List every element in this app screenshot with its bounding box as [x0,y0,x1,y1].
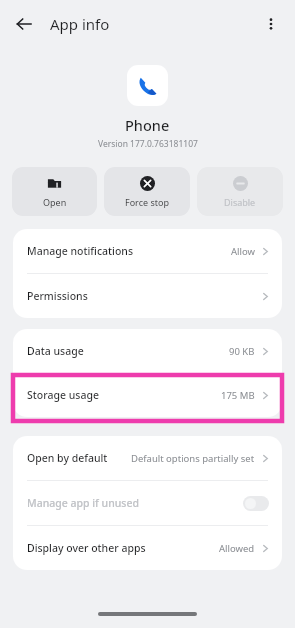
button[interactable]: Permissions [13,274,282,318]
button[interactable]: Display over other apps [13,526,282,570]
button[interactable]: Storage usage [13,373,282,417]
staticText: Manage app if unused [27,496,139,510]
staticText: Disable [224,196,256,208]
button[interactable]: More options [255,8,287,40]
button[interactable]: Manage notifications [13,229,282,273]
staticText: 90 KB [229,345,255,358]
button[interactable]: Open [12,167,97,216]
button[interactable]: Disable [197,167,283,216]
staticText: Storage usage [27,388,99,402]
staticText: Permissions [27,289,88,303]
button[interactable]: Manage app if unused [13,481,282,525]
staticText: Version 177.0.763181107 [98,138,198,150]
button[interactable]: Open by default [13,436,282,480]
staticText: Manage notifications [27,244,134,258]
button[interactable]: Force stop [104,167,190,216]
staticText: Allowed [219,542,255,555]
button[interactable]: Data usage [13,329,282,373]
staticText: 175 MB [221,389,255,402]
staticText: Display over other apps [27,541,146,555]
staticText: Data usage [27,344,84,358]
staticText: App info [50,14,110,34]
staticText: Force stop [125,196,169,208]
staticText: Open [43,196,67,208]
staticText: Default options partially set [131,452,255,465]
button[interactable]: Back [8,8,40,40]
staticText: Allow [231,245,255,258]
staticText: Open by default [27,451,108,465]
staticText: Phone [125,115,170,135]
